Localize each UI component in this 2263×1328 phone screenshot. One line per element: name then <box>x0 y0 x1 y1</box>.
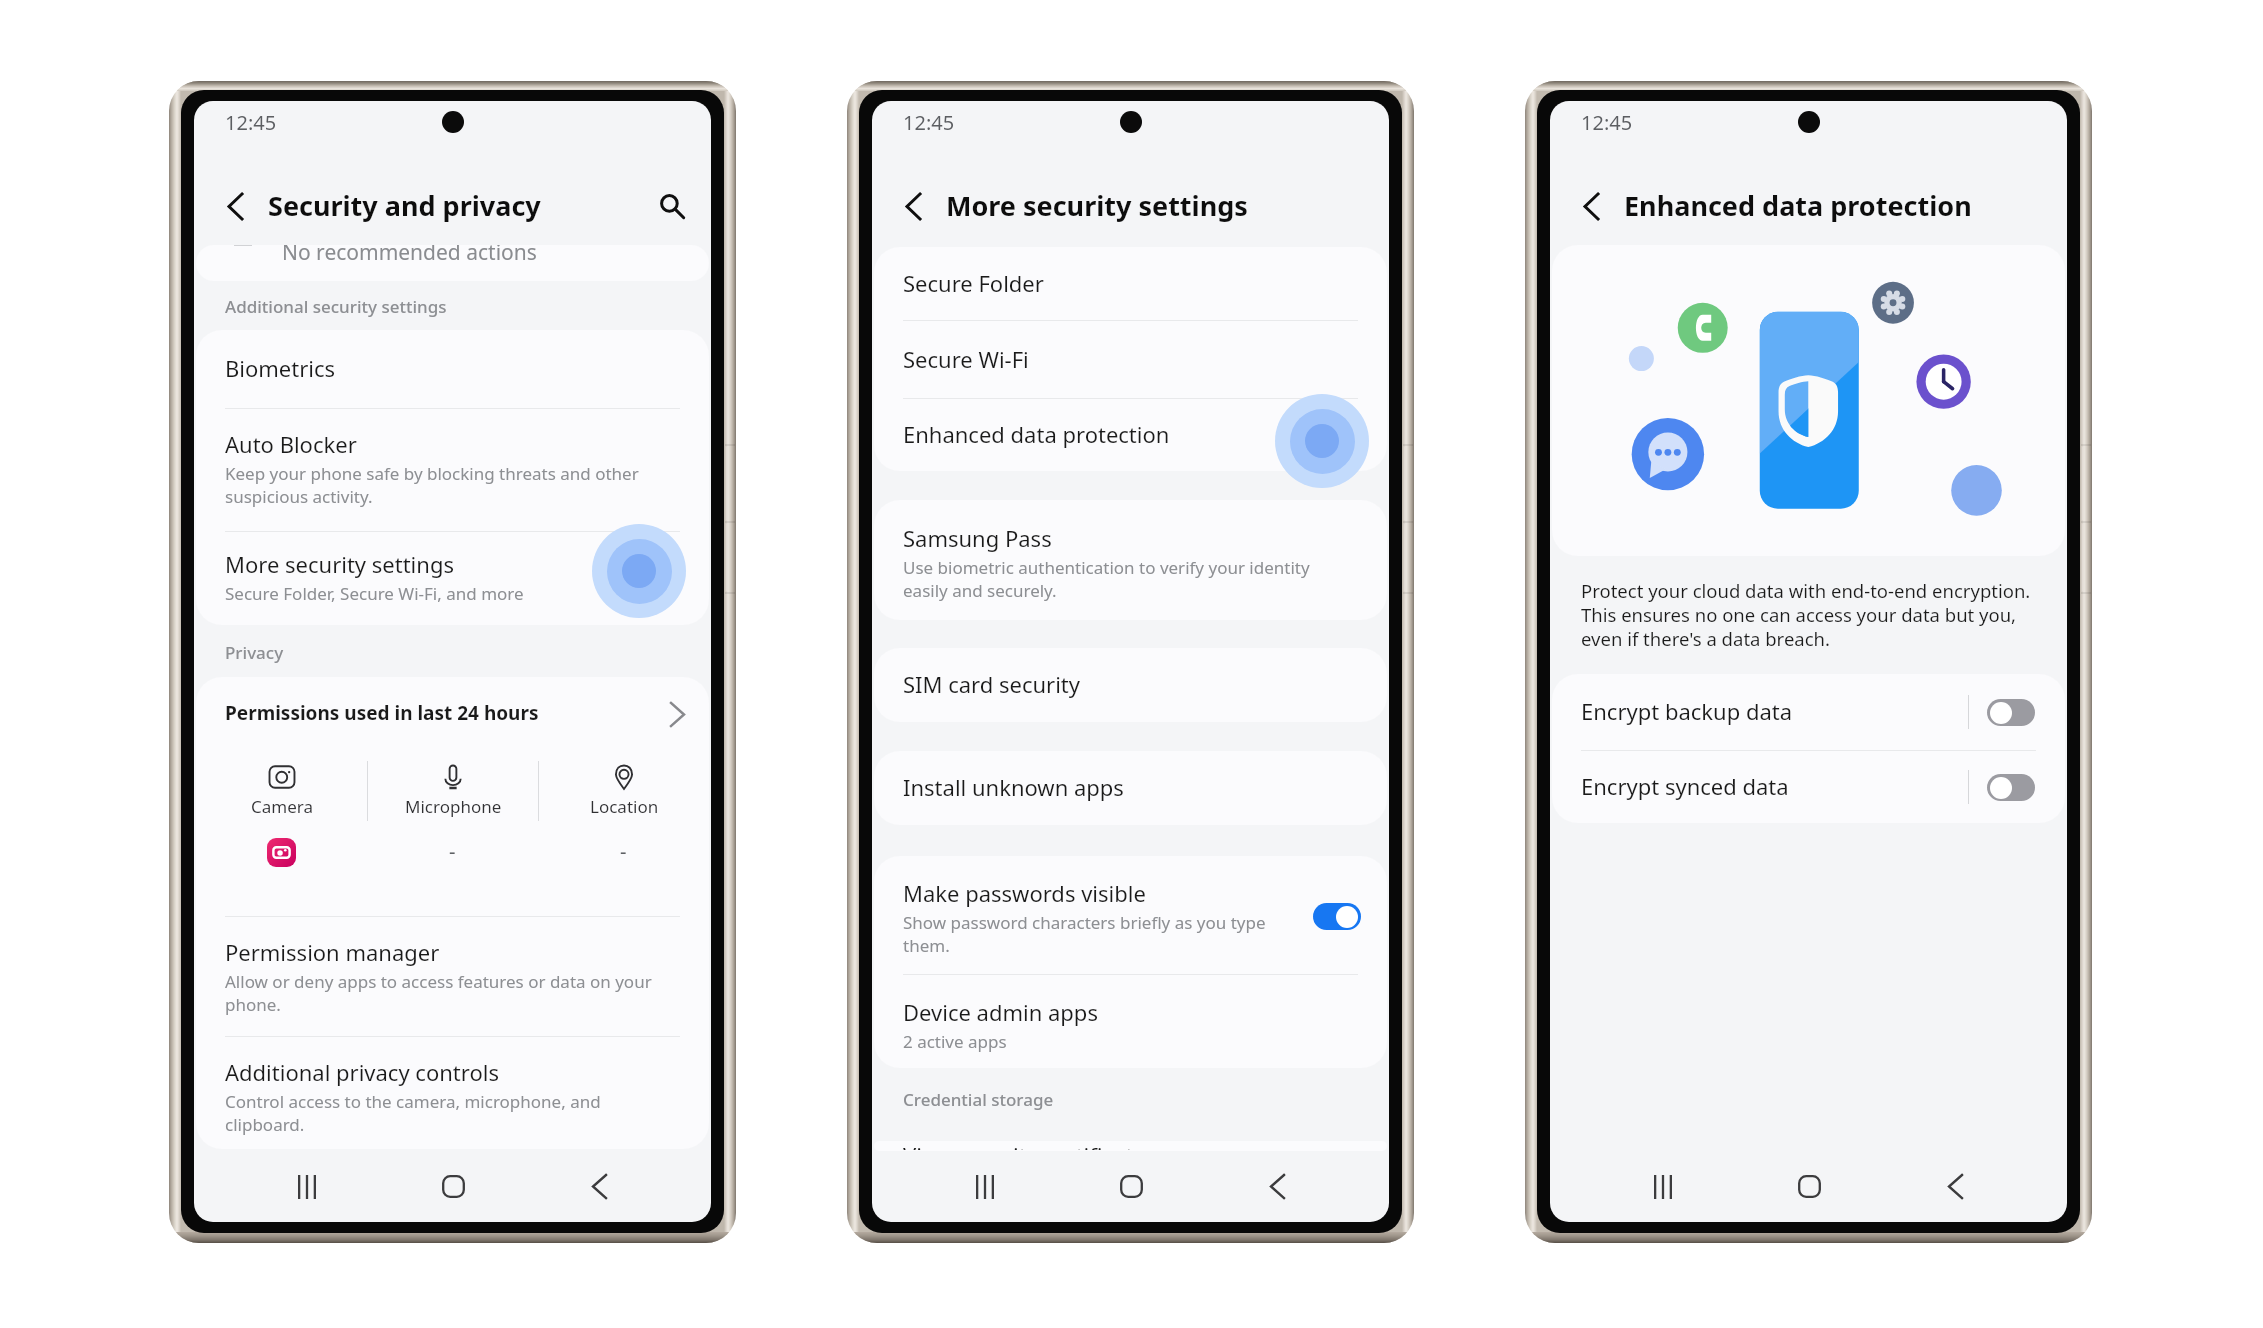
button[interactable]: Off <box>1987 774 2035 801</box>
staticText: 12:45 <box>1581 109 1633 136</box>
button[interactable]: Location <box>539 760 709 822</box>
button[interactable]: Microphone <box>368 760 538 822</box>
button[interactable]: Permissions used in last 24 hours <box>196 677 709 751</box>
button[interactable]: Recent apps <box>1590 1151 1736 1222</box>
staticText: 2 active apps <box>903 1030 1007 1053</box>
staticText: Auto Blocker <box>225 429 357 459</box>
staticText: Enhanced data protection <box>1624 187 1972 224</box>
button[interactable]: Device admin apps <box>874 975 1387 1068</box>
staticText: Control access to the camera, microphone… <box>225 1090 601 1136</box>
staticText: Allow or deny apps to access features or… <box>225 970 652 1016</box>
button[interactable]: Off <box>1987 699 2035 726</box>
button[interactable]: Recent apps <box>912 1151 1058 1222</box>
staticText: Microphone <box>405 795 502 818</box>
staticText: Use biometric authentication to verify y… <box>903 556 1310 602</box>
button[interactable]: Home <box>380 1151 526 1222</box>
button[interactable]: Permission manager <box>196 917 709 1036</box>
staticText: Keep your phone safe by blocking threats… <box>225 462 639 508</box>
button[interactable]: Additional privacy controls <box>196 1037 709 1149</box>
button[interactable]: Enhanced data protection <box>874 399 1387 471</box>
staticText: Secure Wi-Fi <box>903 344 1363 374</box>
staticText: SIM card security <box>903 669 1363 699</box>
button[interactable]: SIM card security <box>874 648 1387 722</box>
button[interactable]: On <box>1313 903 1361 930</box>
staticText: Permission manager <box>225 937 440 967</box>
staticText: Enhanced data protection <box>903 419 1363 449</box>
button[interactable]: Secure Folder <box>874 247 1387 320</box>
button[interactable]: Back <box>1882 1151 2028 1222</box>
staticText: - <box>620 838 627 865</box>
staticText: Biometrics <box>225 353 685 383</box>
staticText: 12:45 <box>225 109 277 136</box>
button[interactable]: Back <box>526 1151 672 1222</box>
staticText: Device admin apps <box>903 997 1098 1027</box>
staticText: Make passwords visible <box>903 878 1146 908</box>
staticText: Privacy <box>225 641 284 664</box>
staticText: Encrypt synced data <box>1581 771 1968 801</box>
staticText: Additional security settings <box>225 295 447 318</box>
staticText: Samsung Pass <box>903 523 1052 553</box>
button[interactable]: Back <box>1569 184 1613 228</box>
button[interactable]: Search <box>650 184 694 228</box>
staticText: Install unknown apps <box>903 772 1363 802</box>
staticText: Location <box>590 795 659 818</box>
staticText: Credential storage <box>903 1088 1054 1111</box>
staticText: Permissions used in last 24 hours <box>225 700 671 726</box>
staticText: - <box>449 838 456 865</box>
button[interactable]: Encrypt backup data <box>1552 674 2065 750</box>
button[interactable]: Back <box>891 184 935 228</box>
staticText: More security settings <box>225 549 454 579</box>
staticText: Secure Folder <box>903 268 1363 298</box>
button[interactable]: Back <box>1204 1151 1350 1222</box>
button[interactable]: Secure Wi-Fi <box>874 321 1387 398</box>
button[interactable]: View security certificates <box>874 1141 1387 1151</box>
button[interactable]: No recommended actions <box>196 245 709 281</box>
staticText: 12:45 <box>903 109 955 136</box>
button[interactable]: Install unknown apps <box>874 751 1387 825</box>
button[interactable]: Back <box>213 184 257 228</box>
button[interactable]: Home <box>1058 1151 1204 1222</box>
staticText: Encrypt backup data <box>1581 696 1968 726</box>
button[interactable]: Encrypt synced data <box>1552 751 2065 823</box>
staticText: Secure Folder, Secure Wi-Fi, and more <box>225 582 524 605</box>
button[interactable]: More security settings <box>196 532 709 625</box>
staticText: Security and privacy <box>268 187 541 224</box>
staticText: Protect your cloud data with end-to-end … <box>1581 578 2031 651</box>
staticText: Show password characters briefly as you … <box>903 911 1266 957</box>
staticText: Additional privacy controls <box>225 1057 499 1087</box>
button[interactable]: Biometrics <box>196 330 709 408</box>
button[interactable]: Home <box>1736 1151 1882 1222</box>
button[interactable]: Auto Blocker <box>196 409 709 531</box>
button[interactable]: Recent apps <box>234 1151 380 1222</box>
staticText: Camera <box>251 795 313 818</box>
button[interactable]: Camera <box>196 760 367 822</box>
staticText: No recommended actions <box>282 245 537 267</box>
staticText: More security settings <box>946 187 1248 224</box>
button[interactable]: Samsung Pass <box>874 500 1387 620</box>
staticText: View security certificates <box>903 1141 1363 1150</box>
button[interactable]: Make passwords visible <box>874 856 1387 974</box>
